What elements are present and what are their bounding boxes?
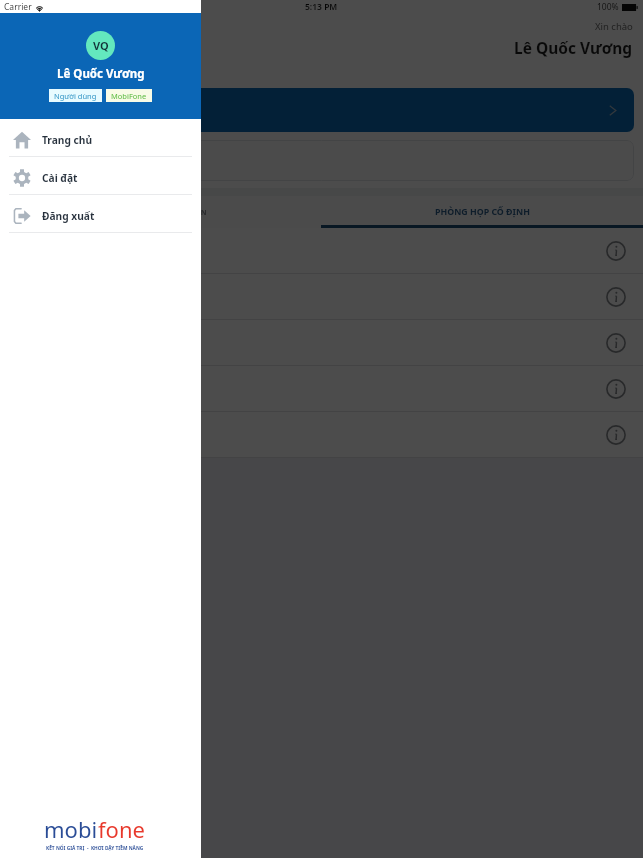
- staticText: Trang chủ: [42, 133, 93, 147]
- button[interactable]: Thông tin: [0, 320, 643, 366]
- staticText: Cài đặt: [42, 171, 78, 185]
- staticText: Người dùng: [54, 91, 97, 101]
- staticText: mobi: [44, 814, 98, 844]
- staticText: 100%: [597, 1, 619, 13]
- button[interactable]: MobiFone: [111, 89, 147, 102]
- button[interactable]: Đăng xuất: [0, 195, 201, 233]
- other: Thông tin: [606, 241, 626, 261]
- button[interactable]: Thông tin: [0, 274, 643, 320]
- staticText: KẾT NỐI GIÁ TRỊ - KHƠI DẬY TIỀM NĂNG: [46, 845, 144, 852]
- staticText: fone: [98, 814, 145, 844]
- button[interactable]: Người dùng: [54, 89, 97, 102]
- staticText: Lê Quốc Vương: [57, 66, 145, 82]
- button[interactable]: Thông tin: [0, 228, 643, 274]
- button[interactable]: Cài đặt: [0, 157, 201, 195]
- button[interactable]: Trang chủ: [0, 119, 201, 157]
- staticText: Carrier: [4, 1, 32, 13]
- staticText: Đăng xuất: [42, 209, 95, 223]
- button[interactable]: PHÒNG HỌP CỐ ĐỊNH: [321, 196, 643, 228]
- other: Thông tin: [606, 425, 626, 445]
- staticText: Lê Quốc Vương: [514, 37, 633, 58]
- button[interactable]: Thông tin: [0, 412, 643, 458]
- button[interactable]: Thông tin: [0, 366, 643, 412]
- other: Thông tin: [606, 379, 626, 399]
- button[interactable]: [9, 140, 634, 181]
- button[interactable]: PHÒNG HỌP TRỰC TUYẾN: [0, 196, 321, 228]
- staticText: PHÒNG HỌP TRỰC TUYẾN: [115, 207, 207, 217]
- staticText: 5:13 PM: [305, 1, 338, 13]
- staticText: Xin chào: [595, 20, 633, 33]
- staticText: MobiFone: [111, 91, 147, 101]
- staticText: PHÒNG HỌP CỐ ĐỊNH: [435, 206, 530, 218]
- other: Thông tin: [606, 287, 626, 307]
- other: Thông tin: [606, 333, 626, 353]
- staticText: Carrier: [4, 1, 32, 13]
- staticText: VQ: [93, 38, 109, 53]
- button[interactable]: [9, 88, 634, 132]
